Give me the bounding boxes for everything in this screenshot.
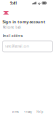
button[interactable]: name@fastmail.com [2,41,52,52]
staticText: Welcome back [2,26,20,29]
staticText: Sign in to my account [2,19,45,24]
button[interactable]: Terms [11,110,18,114]
staticText: Help [36,110,43,114]
button[interactable]: Home [3,11,9,15]
button[interactable]: Help [36,110,43,114]
button[interactable]: Privacy [23,110,31,114]
staticText: name@fastmail.com [4,45,28,48]
staticText: Email address [2,34,22,38]
staticText: Terms [11,110,18,114]
staticText: 9:41 [10,0,17,6]
staticText: Privacy [23,110,31,114]
